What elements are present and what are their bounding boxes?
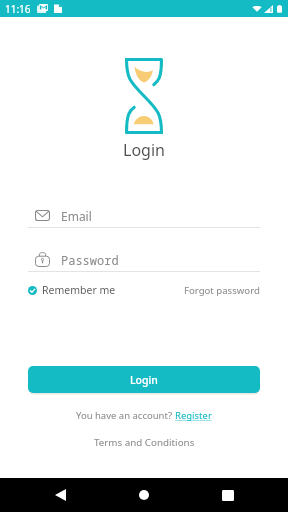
staticText: Login: [130, 373, 158, 387]
staticText: Register: [175, 409, 212, 422]
staticText: You have an account?: [76, 409, 175, 422]
button[interactable]: Home: [112, 478, 176, 512]
staticText: 11:16: [5, 2, 31, 16]
button[interactable]: Remember me: [28, 283, 116, 297]
button[interactable]: Register: [175, 409, 212, 422]
staticText: Remember me: [42, 283, 116, 297]
button[interactable]: Forgot password: [184, 284, 260, 297]
button[interactable]: Recent apps: [196, 478, 260, 512]
button[interactable]: Back: [28, 478, 92, 512]
button[interactable]: Terms and Conditions: [94, 436, 195, 449]
staticText: Login: [123, 139, 165, 161]
staticText: Password: [61, 252, 119, 267]
staticText: Forgot password: [184, 284, 260, 297]
button[interactable]: Login: [28, 366, 260, 393]
staticText: Email: [61, 208, 92, 223]
